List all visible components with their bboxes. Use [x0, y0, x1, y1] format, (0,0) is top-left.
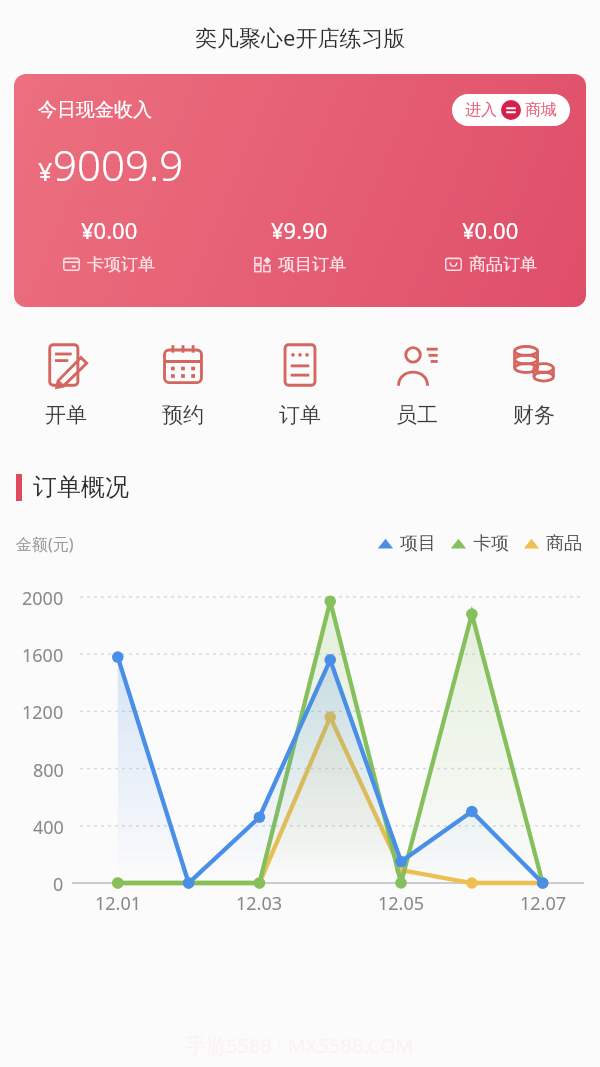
staticText: 项目订单 — [278, 254, 346, 275]
other: 商城 — [501, 100, 521, 120]
staticText: 1600 — [22, 643, 64, 668]
button[interactable]: 卡项 — [450, 532, 509, 555]
staticText: 奕凡聚心e开店练习版 — [195, 22, 406, 52]
staticText: 预约 — [162, 402, 204, 428]
staticText: 12.03 — [236, 891, 283, 916]
staticText: 金额(元) — [16, 533, 74, 555]
staticText: 财务 — [513, 402, 555, 428]
staticText: 12.01 — [95, 891, 142, 916]
staticText: ¥ — [38, 154, 53, 188]
staticText: 12.05 — [378, 891, 425, 916]
staticText: 800 — [33, 758, 64, 783]
staticText: 0 — [53, 872, 64, 897]
button[interactable]: 财务 — [475, 343, 592, 428]
staticText: 12.07 — [520, 891, 567, 916]
button[interactable]: ¥9.90 — [204, 215, 395, 275]
button[interactable]: ¥0.00 — [14, 215, 204, 275]
staticText: 商品 — [546, 532, 582, 555]
staticText: 2000 — [22, 586, 64, 611]
staticText: 卡项订单 — [87, 254, 155, 275]
staticText: ¥0.00 — [81, 215, 138, 245]
staticText: 项目 — [400, 532, 436, 555]
button[interactable]: 订单 — [241, 343, 358, 428]
button[interactable]: 员工 — [358, 343, 475, 428]
staticText: 卡项 — [473, 532, 509, 555]
button[interactable]: 项目 — [377, 532, 436, 555]
staticText: 开单 — [45, 402, 87, 428]
staticText: 订单概况 — [33, 472, 129, 502]
staticText: 商品订单 — [469, 254, 537, 275]
staticText: 订单 — [279, 402, 321, 428]
button[interactable]: 开单 — [8, 343, 124, 428]
staticText: 手游5588 · MX5588.COM — [186, 1032, 414, 1059]
button[interactable]: 商品 — [523, 532, 582, 555]
button[interactable]: ¥0.00 — [395, 215, 586, 275]
button[interactable]: 进入 — [452, 94, 570, 126]
staticText: 员工 — [396, 402, 438, 428]
button[interactable]: 今日现金收入 — [14, 74, 586, 307]
staticText: ¥0.00 — [462, 215, 519, 245]
staticText: 进入 — [465, 100, 497, 120]
staticText: 商城 — [525, 100, 557, 120]
staticText: ¥9.90 — [271, 215, 328, 245]
button[interactable]: 预约 — [124, 343, 241, 428]
staticText: 400 — [33, 815, 64, 840]
staticText: 9009.9 — [53, 136, 184, 193]
staticText: 1200 — [22, 700, 64, 725]
staticText: 今日现金收入 — [38, 98, 152, 122]
